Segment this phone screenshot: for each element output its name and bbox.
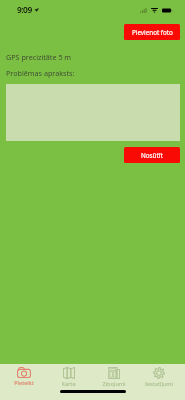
staticText: Ziņojumi: [102, 380, 126, 388]
staticText: Karte: [61, 380, 76, 388]
staticText: Iestatījumi: [145, 380, 173, 388]
button[interactable]: Nosūtīt: [124, 147, 180, 163]
staticText: Nosūtīt: [141, 151, 163, 160]
button[interactable]: Pievienot foto: [124, 24, 180, 40]
button[interactable]: Ziņojumi: [91, 364, 136, 388]
staticText: Pievienot foto: [132, 28, 173, 37]
button[interactable]: Karte: [46, 364, 91, 388]
button[interactable]: Pieteikt: [2, 364, 46, 387]
staticText: Pieteikt: [14, 379, 34, 387]
staticText: GPS precizitāte 5 m: [6, 52, 72, 62]
staticText: 9:09: [17, 4, 32, 15]
staticText: Problēmas apraksts:: [6, 68, 75, 78]
button[interactable]: Iestatījumi: [136, 364, 181, 388]
